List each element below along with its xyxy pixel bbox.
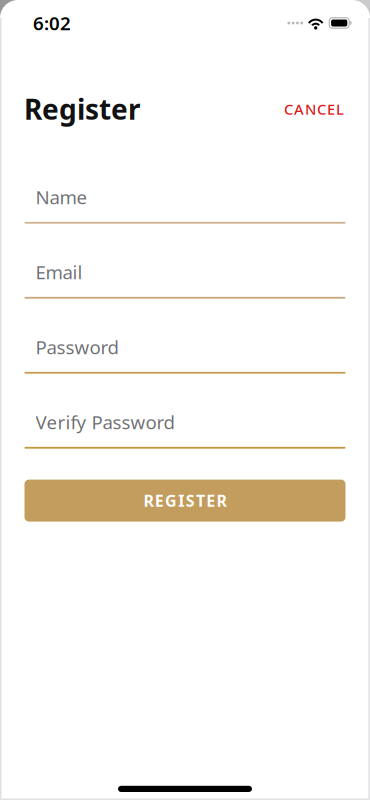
button[interactable]: CANCEL [282,94,346,124]
staticText: CANCEL [284,99,344,119]
staticText: Name [35,184,87,209]
staticText: Email [35,259,82,284]
button[interactable]: REGISTER [24,480,345,522]
button[interactable]: Email [24,259,345,299]
staticText: Password [35,334,118,359]
staticText: Verify Password [35,409,174,434]
staticText: 6:02 [33,11,71,35]
staticText: REGISTER [143,490,227,511]
button[interactable]: Verify Password [24,409,345,449]
button[interactable]: Name [24,184,345,224]
button[interactable]: Password [24,334,345,374]
staticText: Register [24,90,141,128]
